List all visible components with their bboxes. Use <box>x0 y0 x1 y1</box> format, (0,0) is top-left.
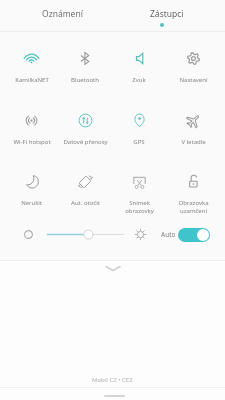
button[interactable]: Zvuk <box>112 46 166 84</box>
button[interactable]: Zástupci <box>112 0 225 31</box>
button[interactable]: Collapse panel <box>105 262 121 274</box>
staticText: KamilkaNET <box>15 76 49 84</box>
button[interactable]: Snímek obrazovky <box>112 169 166 215</box>
staticText: Nerušit <box>21 199 42 207</box>
button[interactable]: Nerušit <box>5 169 58 207</box>
button[interactable]: Wi-Fi hotspot <box>5 108 58 146</box>
button[interactable]: Nastavení <box>166 46 220 84</box>
staticText: Aut. otočit <box>71 199 100 207</box>
staticText: Oznámení <box>42 8 83 20</box>
button[interactable]: Obrazovka uzamčení <box>166 169 220 215</box>
staticText: Bluetooth <box>71 76 99 84</box>
button[interactable]: V letadle <box>166 108 220 146</box>
staticText: GPS <box>133 138 145 146</box>
staticText: Snímek obrazovky <box>125 199 154 215</box>
staticText: Auto <box>161 230 176 239</box>
staticText: Mobil CZ • CEZ <box>92 376 133 384</box>
staticText: V letadle <box>181 138 206 146</box>
button[interactable]: Oznámení <box>0 0 112 31</box>
button[interactable]: GPS <box>112 108 166 146</box>
button[interactable]: Datové přenosy <box>58 108 112 146</box>
button[interactable]: Auto brightness toggle <box>178 228 210 242</box>
staticText: Datové přenosy <box>63 138 108 146</box>
staticText: Nastavení <box>179 76 208 84</box>
staticText: Wi-Fi hotspot <box>13 138 51 146</box>
button[interactable]: Bluetooth <box>58 46 112 84</box>
staticText: Zvuk <box>132 76 146 84</box>
staticText: Obrazovka uzamčení <box>178 199 209 215</box>
button[interactable]: Aut. otočit <box>58 169 112 207</box>
button[interactable]: Brightness <box>41 228 131 241</box>
button[interactable]: KamilkaNET <box>5 46 58 84</box>
staticText: Zástupci <box>150 8 184 20</box>
